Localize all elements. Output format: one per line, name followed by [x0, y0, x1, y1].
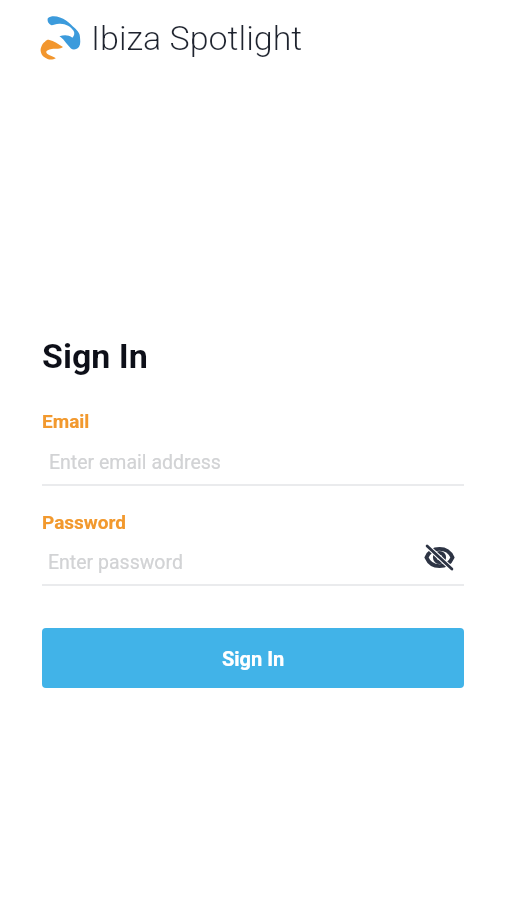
- staticText: Sign In: [42, 336, 148, 376]
- button[interactable]: Enter password: [42, 545, 412, 583]
- button[interactable]: Show password: [414, 538, 464, 576]
- button[interactable]: Sign In: [42, 628, 464, 688]
- button[interactable]: Enter email address: [42, 446, 464, 486]
- staticText: Password: [42, 511, 126, 533]
- staticText: Enter email address: [49, 451, 221, 474]
- staticText: Ibiza Spotlight: [91, 18, 303, 58]
- staticText: Sign In: [222, 647, 285, 670]
- button[interactable]: Ibiza Spotlight home: [37, 15, 303, 61]
- staticText: Email: [42, 410, 90, 432]
- staticText: Enter password: [48, 551, 183, 574]
